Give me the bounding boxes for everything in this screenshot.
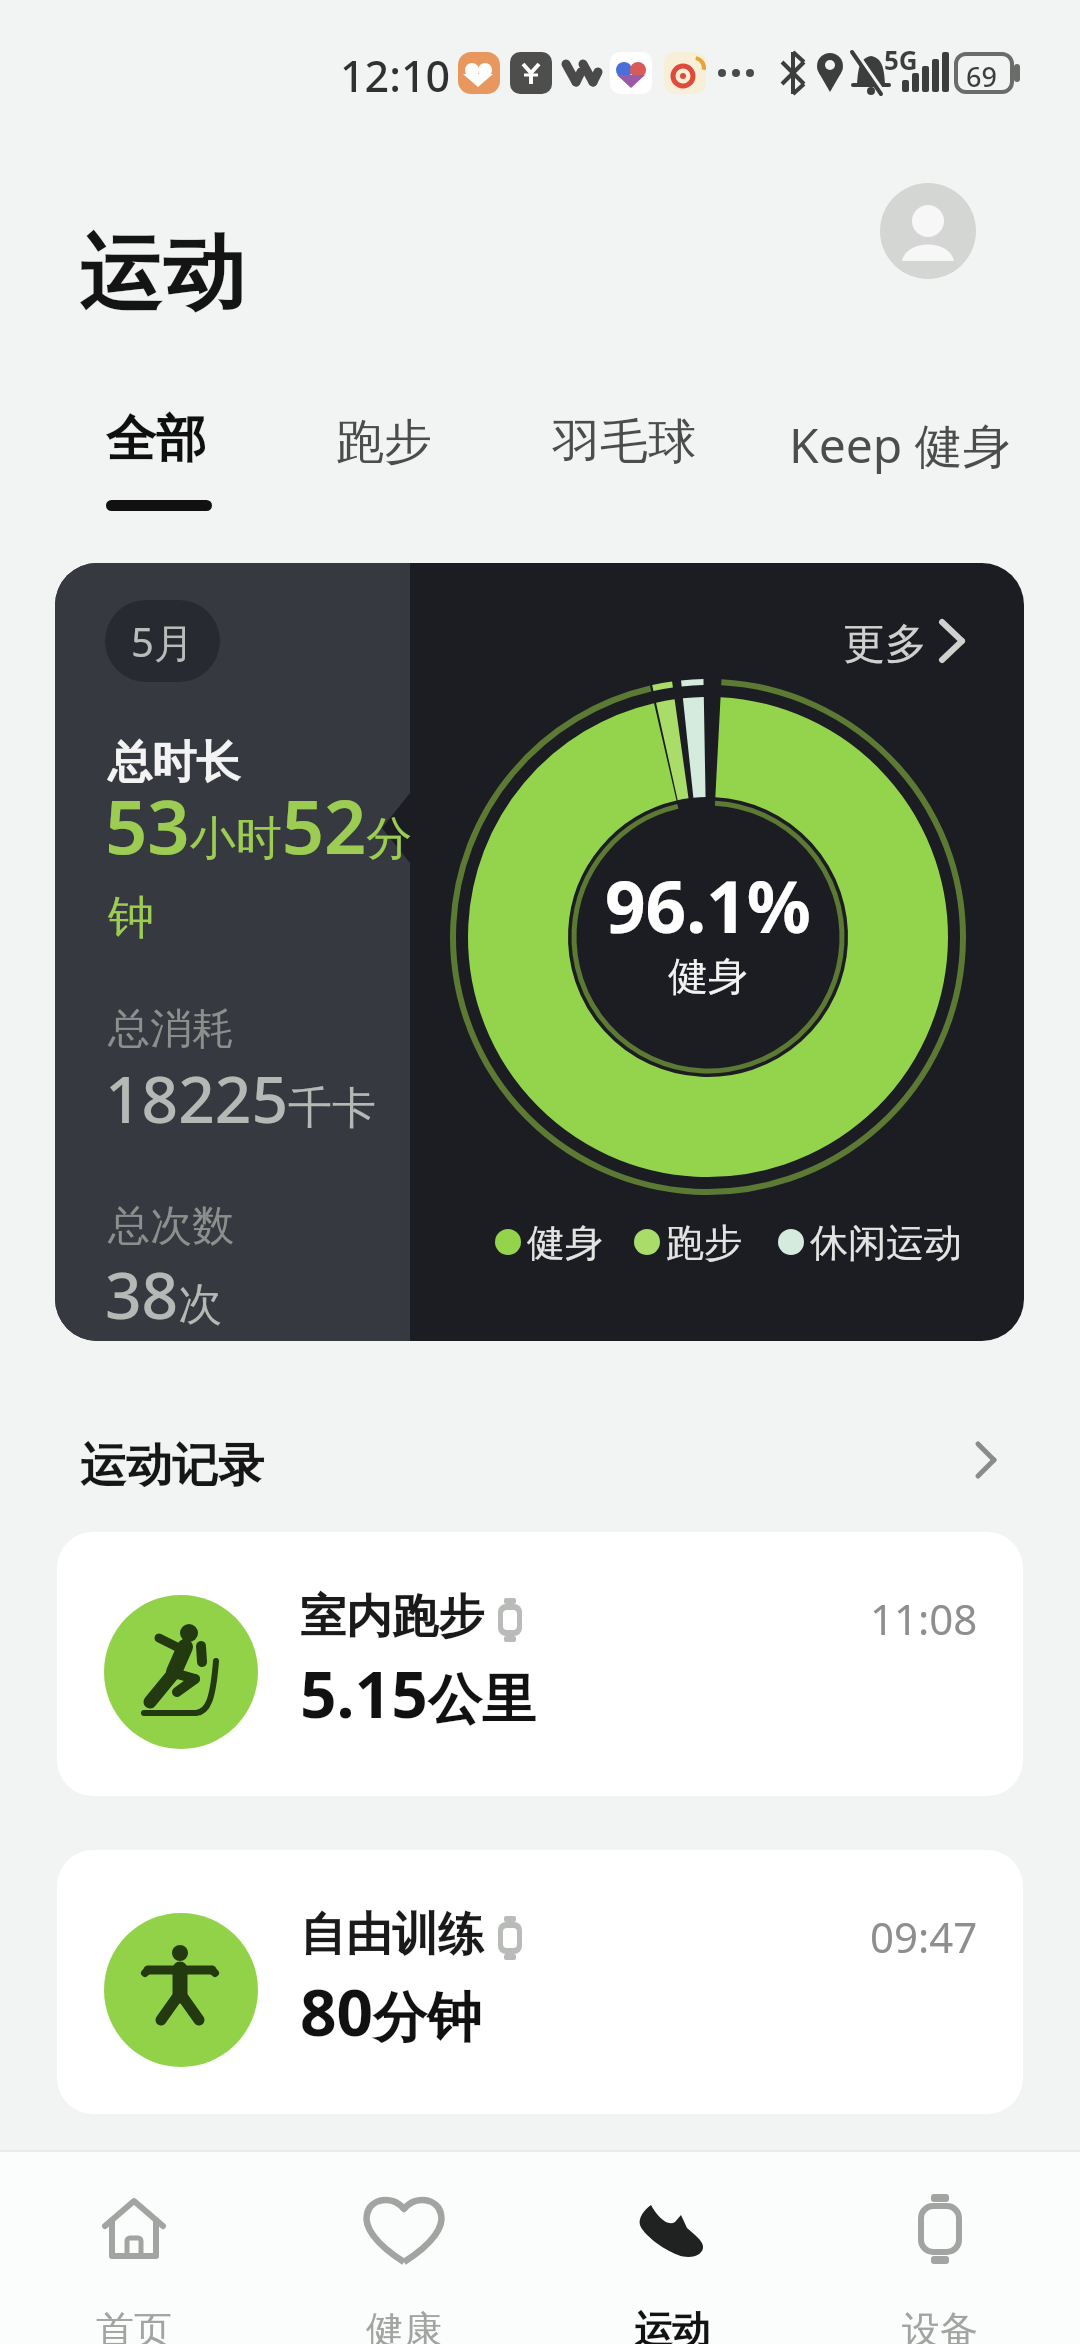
staticText: 11:08 [870, 1590, 978, 1647]
staticText: 53小时52分 [105, 775, 413, 876]
staticText: 总次数 [108, 1200, 234, 1253]
staticText: 运动 [78, 222, 246, 325]
staticText: 全部 [106, 408, 206, 471]
button[interactable]: 健康 [324, 2182, 484, 2342]
button[interactable]: 全部 [90, 395, 230, 475]
staticText: 5G [884, 42, 918, 77]
button[interactable]: 室内跑步 [57, 1532, 1023, 1796]
button[interactable]: Keep 健身 [773, 398, 1013, 474]
staticText: Keep 健身 [789, 412, 1011, 478]
button[interactable]: 运动记录 [60, 1420, 1020, 1500]
staticText: 跑步 [336, 412, 432, 472]
staticText: 运动记录 [80, 1437, 264, 1495]
staticText: 总时长 [108, 735, 240, 790]
staticText: 室内跑步 [300, 1588, 484, 1646]
staticText: 69 [966, 58, 997, 95]
button[interactable]: 设备 [860, 2182, 1020, 2342]
staticText: 38次 [105, 1251, 223, 1338]
staticText: 80分钟 [300, 1968, 482, 2055]
staticText: 运动 [634, 2306, 710, 2344]
staticText: 跑步 [666, 1219, 742, 1267]
staticText: 96.1% [605, 857, 811, 952]
staticText: 健康 [366, 2306, 442, 2344]
staticText: 09:47 [870, 1908, 978, 1965]
staticText: 健身 [668, 951, 748, 1001]
staticText: 18225千卡 [105, 1055, 377, 1142]
button[interactable]: 首页 [54, 2182, 214, 2342]
button[interactable]: 自由训练 [57, 1850, 1023, 2114]
button[interactable]: 5月 [55, 563, 1024, 1341]
button[interactable]: 运动 [592, 2182, 752, 2342]
staticText: 总消耗 [108, 1003, 234, 1056]
staticText: 休闲运动 [810, 1219, 962, 1267]
button[interactable]: 羽毛球 [536, 398, 716, 474]
staticText: 羽毛球 [552, 412, 696, 472]
staticText: 自由训练 [300, 1906, 484, 1964]
button[interactable]: 跑步 [320, 398, 460, 474]
staticText: 钟 [108, 889, 154, 947]
staticText: 首页 [96, 2306, 172, 2344]
staticText: 设备 [902, 2306, 978, 2344]
staticText: 健身 [527, 1219, 603, 1267]
staticText: 12:10 [340, 46, 451, 105]
button[interactable]: 更多 [825, 603, 995, 673]
button[interactable] [880, 183, 976, 279]
staticText: 5.15公里 [300, 1650, 536, 1737]
staticText: 更多 [843, 618, 927, 671]
staticText: 5月 [131, 614, 194, 669]
